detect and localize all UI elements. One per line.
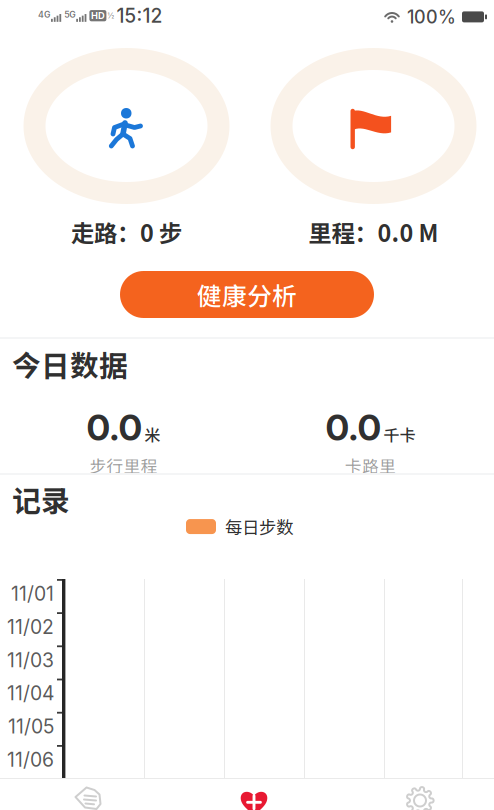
button[interactable]: 添加 [172, 787, 336, 810]
staticText: 卡路里 [345, 453, 396, 477]
staticText: 100% [407, 6, 456, 28]
staticText: ½ [107, 11, 114, 21]
staticText: 记录 [12, 478, 70, 519]
staticText: 今日数据 [12, 343, 128, 384]
staticText: 米 [144, 423, 160, 446]
staticText: 步行里程 [89, 453, 157, 477]
staticText: 11/02 [7, 615, 54, 639]
button[interactable]: 设置 [338, 785, 494, 810]
staticText: 5G [64, 9, 75, 20]
staticText: 千卡 [383, 423, 415, 446]
button[interactable]: 记录 [6, 783, 170, 810]
button[interactable]: 健康分析 [120, 271, 374, 318]
staticText: 0.0 [86, 405, 142, 449]
staticText: 15:12 [116, 4, 162, 27]
staticText: 每日步数 [225, 514, 293, 539]
staticText: 11/05 [8, 715, 54, 738]
staticText: 健康分析 [197, 277, 297, 312]
staticText: 里程：0.0 M [308, 215, 438, 249]
staticText: 11/06 [7, 748, 54, 771]
staticText: 0.0 [325, 405, 381, 449]
staticText: 11/03 [7, 648, 54, 672]
staticText: 11/04 [7, 682, 54, 705]
staticText: HD [91, 10, 105, 21]
staticText: 11/01 [11, 582, 54, 605]
staticText: 走路：0 步 [71, 215, 182, 249]
staticText: 4G [38, 9, 50, 20]
